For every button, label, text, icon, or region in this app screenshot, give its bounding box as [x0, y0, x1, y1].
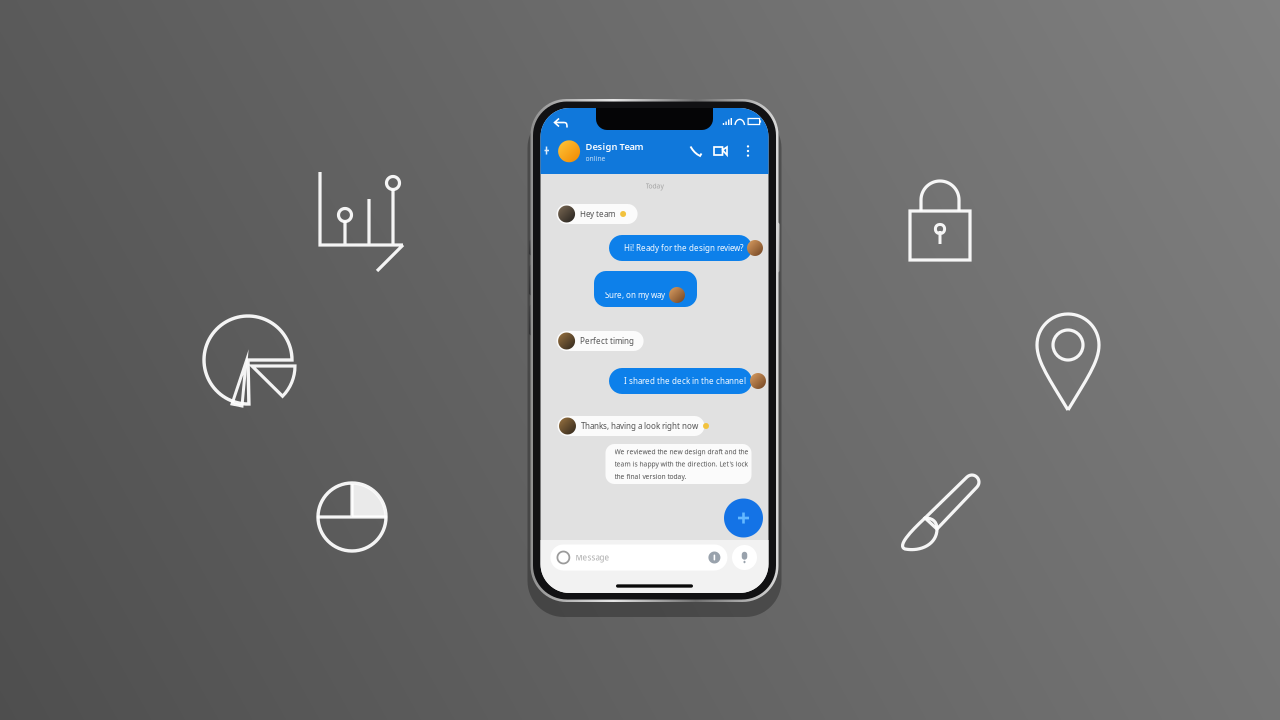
button[interactable]: Perfect timing — [557, 331, 644, 351]
staticText: Message — [575, 552, 609, 563]
button[interactable]: We reviewed the new design draft and the — [605, 444, 751, 484]
staticText: the final version today. — [614, 472, 686, 481]
button[interactable]: I shared the deck in the channel — [609, 368, 752, 394]
staticText: Thanks, having a look right now — [581, 421, 698, 431]
staticText: Today — [645, 182, 663, 190]
button[interactable]: More — [742, 144, 754, 157]
button[interactable]: Call — [689, 144, 703, 157]
button[interactable]: Hi! Ready for the design review? — [609, 235, 752, 261]
staticText: Hi! Ready for the design review? — [624, 243, 743, 253]
button[interactable]: Back — [554, 118, 569, 128]
staticText: We reviewed the new design draft and the — [614, 447, 748, 456]
staticText: Perfect timing — [580, 336, 634, 346]
button[interactable]: Voice message — [732, 545, 757, 570]
button[interactable]: Video call — [713, 144, 728, 157]
button[interactable]: Hey team — [557, 204, 638, 224]
staticText: Hey team — [580, 209, 615, 219]
staticText: online — [585, 154, 605, 163]
button[interactable]: New message — [724, 498, 763, 537]
staticText: Design Team — [585, 140, 643, 152]
staticText: I shared the deck in the channel — [624, 376, 746, 386]
button[interactable]: Thanks, having a look right now — [557, 416, 704, 436]
button[interactable]: Sure, on my way — [594, 271, 697, 307]
button[interactable]: Message — [550, 544, 727, 570]
staticText: Sure, on my way — [605, 290, 665, 300]
staticText: team is happy with the direction. Let's … — [614, 460, 748, 468]
